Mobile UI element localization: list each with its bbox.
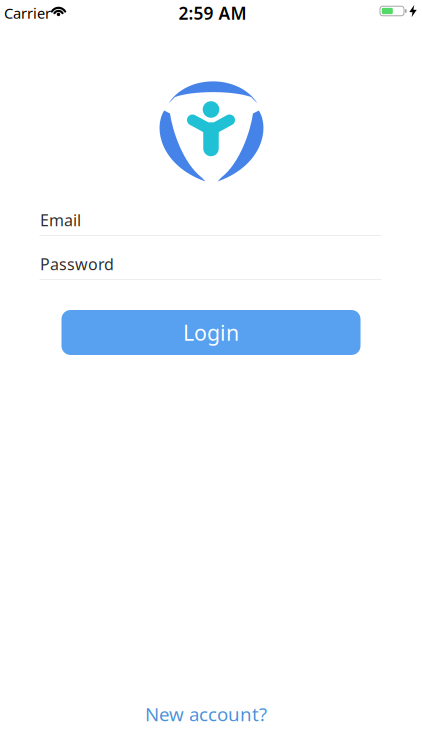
staticText: Password xyxy=(40,253,114,275)
staticText: New account? xyxy=(145,702,267,726)
button[interactable]: Login xyxy=(61,310,360,355)
staticText: Carrier xyxy=(4,3,51,23)
button[interactable]: New account? xyxy=(145,702,267,726)
staticText: 2:59 AM xyxy=(178,1,246,24)
button[interactable]: Password xyxy=(40,247,382,281)
button[interactable]: Email xyxy=(40,203,382,237)
staticText: Email xyxy=(40,209,81,231)
staticText: Login xyxy=(183,318,239,347)
